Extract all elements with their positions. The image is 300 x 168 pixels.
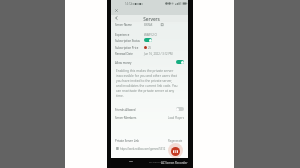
staticText: WAW (2 C) — [144, 33, 158, 37]
button[interactable]: Home — [129, 161, 133, 162]
staticText: Renewal Date — [115, 52, 133, 56]
button[interactable]: Toggle on — [144, 38, 152, 42]
staticText: Load Players — [168, 116, 185, 120]
button[interactable]: Toggle on — [176, 60, 184, 64]
button[interactable] — [111, 39, 188, 45]
button[interactable] — [111, 22, 188, 28]
staticText: Enabling this makes the private server i… — [116, 69, 181, 98]
staticText: Recorded by — [149, 161, 162, 164]
button[interactable]: Toggle off — [176, 107, 184, 111]
button[interactable] — [111, 52, 188, 58]
staticText: Server Members — [115, 116, 137, 120]
staticText: Regenerate — [168, 139, 183, 143]
button[interactable]: Copy server name — [161, 23, 164, 26]
staticText: Subscription Price — [115, 46, 139, 50]
staticText: 25 — [148, 46, 152, 50]
staticText: Servers — [113, 16, 190, 22]
button[interactable] — [111, 106, 188, 113]
staticText: AZ Screen Recorder — [161, 161, 188, 165]
staticText: https://web.roblox.com/games/5312 — [120, 147, 166, 151]
staticText: Friends Allowed — [115, 108, 136, 112]
button[interactable]: Back — [113, 15, 119, 21]
button[interactable] — [111, 59, 188, 67]
staticText: Subscription Status — [115, 39, 140, 43]
staticText: Private Server Link — [115, 139, 140, 143]
staticText: BXRA8 — [144, 23, 153, 27]
button[interactable]: Close — [114, 8, 119, 13]
staticText: Allow money — [115, 61, 132, 65]
button[interactable] — [111, 33, 188, 39]
staticText: Server Name — [115, 23, 132, 27]
button[interactable] — [111, 114, 188, 121]
staticText: Experience — [115, 33, 130, 37]
button[interactable] — [111, 138, 188, 145]
staticText: Jun 16, 2022 / 3:12 PM — [144, 52, 173, 56]
staticText: 14:12 — [125, 2, 132, 6]
button[interactable] — [111, 45, 188, 51]
button[interactable] — [111, 145, 188, 152]
button[interactable]: AZ Screen Recorder — [171, 147, 180, 156]
